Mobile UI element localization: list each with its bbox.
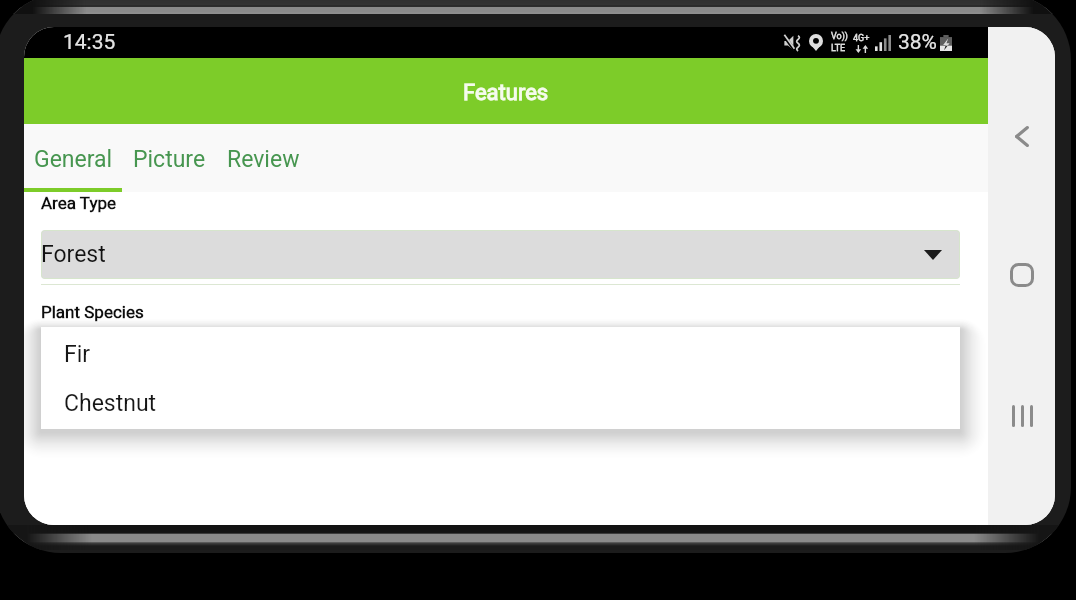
staticText: Picture — [133, 146, 206, 173]
button[interactable]: Picture — [122, 124, 216, 192]
button[interactable]: General — [24, 124, 122, 192]
button[interactable]: Review — [216, 124, 310, 192]
staticText: Features — [463, 80, 549, 106]
staticText: 4G+ — [853, 33, 870, 44]
other: Open dropdown — [924, 250, 942, 260]
staticText: Vo)) — [831, 31, 848, 42]
staticText: LTE — [831, 43, 846, 54]
button[interactable]: Home — [996, 249, 1048, 301]
staticText: Fir — [64, 341, 91, 368]
staticText: Review — [227, 146, 300, 173]
staticText: Area Type — [41, 193, 116, 213]
button[interactable]: Back — [996, 110, 1048, 162]
button[interactable]: Forest — [41, 230, 960, 279]
staticText: General — [34, 146, 113, 173]
button[interactable]: Recent apps — [996, 390, 1048, 442]
staticText: 14:35 — [63, 30, 116, 55]
staticText: Plant Species — [41, 302, 144, 322]
button[interactable]: Chestnut — [41, 379, 960, 428]
button[interactable]: Fir — [41, 330, 960, 379]
staticText: 38% — [898, 30, 937, 55]
staticText: Chestnut — [64, 390, 157, 417]
staticText: Forest — [41, 241, 106, 268]
